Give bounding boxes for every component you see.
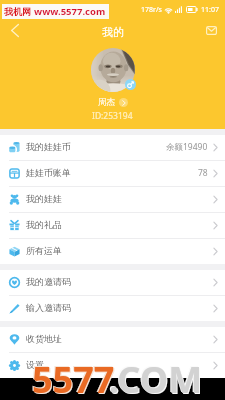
button[interactable]: 我的礼品	[0, 213, 225, 238]
staticText: ID:253194	[92, 110, 133, 122]
staticText: 5577	[32, 355, 115, 395]
staticText: 我的娃娃	[26, 193, 62, 204]
staticText: 5577	[33, 356, 116, 396]
staticText: 所有运单	[26, 245, 62, 256]
staticText: 余额19490	[166, 141, 208, 153]
button[interactable]: 输入邀请码	[0, 296, 225, 321]
staticText: .COM	[108, 354, 202, 394]
staticText: www.5577.com	[34, 5, 106, 18]
button[interactable]: 我的邀请码	[0, 270, 225, 295]
button[interactable]: Messages	[197, 18, 225, 42]
button[interactable]: 所有运单	[0, 239, 225, 264]
button[interactable]: 我的娃娃	[0, 187, 225, 212]
staticText: .COM	[109, 355, 203, 395]
button[interactable]: Avatar	[91, 48, 135, 92]
staticText: 11:07	[201, 5, 219, 15]
staticText: 设置	[26, 359, 44, 370]
button[interactable]: 设置	[0, 353, 225, 378]
staticText: .COM	[110, 356, 204, 396]
staticText: 5577	[31, 354, 114, 394]
staticText: 输入邀请码	[26, 302, 71, 313]
staticText: 178r/s	[141, 5, 162, 15]
staticText: 78	[198, 167, 208, 179]
staticText: 收货地址	[26, 333, 62, 344]
button[interactable]: 周杰	[98, 97, 128, 108]
staticText: 我的	[102, 25, 124, 39]
staticText: 我的邀请码	[26, 276, 71, 287]
button[interactable]: Back	[0, 18, 30, 42]
staticText: 我的娃娃币	[26, 141, 71, 152]
button[interactable]: 我的娃娃币	[0, 135, 225, 160]
staticText: 我机网	[4, 6, 31, 17]
staticText: 娃娃币账单	[26, 167, 71, 178]
staticText: 周杰	[98, 97, 115, 108]
button[interactable]: 收货地址	[0, 327, 225, 352]
button[interactable]: 娃娃币账单	[0, 161, 225, 186]
staticText: 我的礼品	[26, 219, 62, 230]
